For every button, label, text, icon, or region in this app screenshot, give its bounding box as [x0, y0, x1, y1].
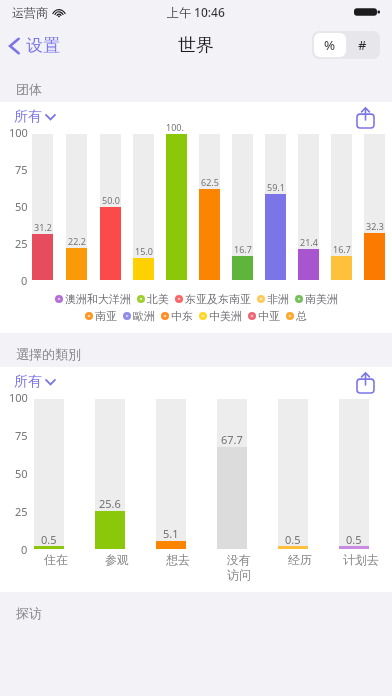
- staticText: 中美洲: [209, 309, 242, 323]
- staticText: 100: [9, 390, 28, 405]
- staticText: 计划去: [343, 552, 379, 567]
- button[interactable]: 南美洲: [295, 292, 338, 306]
- staticText: 100.0: [166, 121, 187, 133]
- staticText: 中东: [171, 309, 193, 323]
- staticText: 想去: [166, 552, 190, 567]
- staticText: 25: [15, 236, 28, 251]
- button[interactable]: 歐洲: [123, 309, 155, 323]
- staticText: 50: [15, 466, 28, 481]
- staticText: #: [358, 36, 367, 54]
- staticText: 21.4: [300, 236, 318, 248]
- staticText: 南亚: [95, 309, 117, 323]
- button[interactable]: 澳洲和大洋洲: [55, 292, 131, 306]
- button[interactable]: 中亚: [248, 309, 280, 323]
- button[interactable]: 非洲: [257, 292, 289, 306]
- staticText: 50: [15, 199, 28, 214]
- staticText: 经历: [288, 552, 312, 567]
- staticText: 北美: [147, 292, 169, 306]
- staticText: 澳洲和大洋洲: [65, 292, 131, 306]
- staticText: 62.5: [201, 176, 219, 188]
- staticText: 非洲: [267, 292, 289, 306]
- button[interactable]: 所有: [0, 105, 63, 129]
- button[interactable]: 中东: [161, 309, 193, 323]
- staticText: %: [324, 36, 336, 54]
- button[interactable]: 北美: [137, 292, 169, 306]
- button[interactable]: Share: [352, 369, 378, 395]
- staticText: 所有: [14, 373, 42, 391]
- staticText: 75: [15, 428, 28, 443]
- staticText: 0: [21, 542, 28, 557]
- staticText: 32.3: [366, 220, 384, 232]
- button[interactable]: 东亚及东南亚: [175, 292, 251, 306]
- staticText: 上午 10:46: [167, 4, 225, 20]
- staticText: 0.5: [41, 532, 57, 547]
- staticText: 25.6: [99, 496, 121, 511]
- staticText: 南美洲: [305, 292, 338, 306]
- staticText: 5.1: [163, 526, 179, 541]
- staticText: 100: [9, 125, 28, 140]
- staticText: 中亚: [258, 309, 280, 323]
- staticText: 16.7: [333, 243, 351, 255]
- staticText: 访问: [227, 567, 251, 582]
- button[interactable]: 总: [286, 309, 307, 323]
- staticText: 参观: [105, 552, 129, 567]
- staticText: 16.7: [234, 243, 252, 255]
- staticText: 世界: [178, 34, 214, 57]
- staticText: 东亚及东南亚: [185, 292, 251, 306]
- staticText: 总: [296, 309, 307, 323]
- button[interactable]: 中美洲: [199, 309, 242, 323]
- staticText: 设置: [26, 35, 60, 56]
- staticText: 歐洲: [133, 309, 155, 323]
- staticText: 0.5: [285, 532, 301, 547]
- staticText: 67.7: [221, 432, 243, 447]
- staticText: 0.5: [346, 532, 362, 547]
- staticText: 0: [21, 273, 28, 288]
- button[interactable]: 南亚: [85, 309, 117, 323]
- staticText: 15.0: [135, 245, 153, 257]
- staticText: 住在: [44, 552, 68, 567]
- button[interactable]: 所有: [0, 370, 63, 394]
- staticText: 59.1: [267, 181, 285, 193]
- staticText: 31.2: [34, 221, 52, 233]
- staticText: 探访: [16, 605, 42, 621]
- staticText: 選擇的類別: [16, 346, 81, 362]
- button[interactable]: %: [314, 33, 346, 57]
- button[interactable]: Share: [352, 104, 378, 130]
- staticText: 50.0: [102, 194, 120, 206]
- staticText: 25: [15, 504, 28, 519]
- staticText: 团体: [16, 81, 42, 97]
- staticText: 所有: [14, 108, 42, 126]
- button[interactable]: 设置: [0, 31, 68, 60]
- staticText: 22.2: [68, 235, 86, 247]
- staticText: 75: [15, 162, 28, 177]
- staticText: 没有: [227, 552, 251, 567]
- staticText: 运营商: [12, 5, 48, 20]
- button[interactable]: #: [346, 33, 378, 57]
